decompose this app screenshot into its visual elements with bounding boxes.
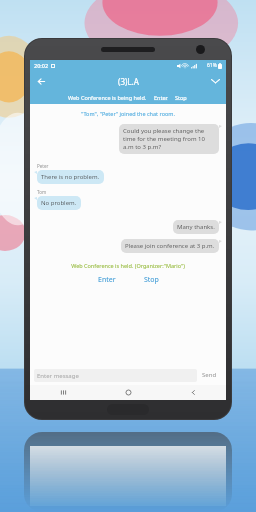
button[interactable]: Home — [96, 385, 161, 400]
staticText: Many thanks. — [177, 223, 215, 231]
button[interactable]: Stop — [136, 274, 167, 286]
staticText: There is no problem. — [41, 173, 100, 181]
staticText: Web Conference is held. (Organizer:"Mari… — [34, 262, 222, 269]
button[interactable]: Recent apps — [30, 385, 96, 400]
staticText: Enter message — [37, 372, 79, 380]
button[interactable]: Expand menu — [207, 73, 223, 89]
button[interactable]: Send — [197, 368, 222, 382]
staticText: 20:02 — [34, 62, 49, 69]
button[interactable]: Enter — [153, 94, 169, 101]
button[interactable]: Back — [33, 73, 49, 89]
staticText: 61% — [207, 62, 217, 69]
staticText: (3)L.A — [118, 76, 139, 87]
staticText: "Tom", "Peter" joined the chat room. — [34, 110, 222, 117]
button[interactable]: Could you please change the time for the… — [119, 124, 219, 154]
staticText: Enter — [98, 275, 116, 285]
staticText: Enter — [154, 94, 168, 101]
staticText: Peter — [37, 163, 49, 169]
staticText: Stop — [144, 275, 159, 285]
button[interactable]: Enter message — [34, 369, 197, 382]
button[interactable]: Please join conference at 3 p.m. — [121, 239, 219, 253]
button[interactable]: Stop — [174, 94, 188, 101]
staticText: No problem. — [41, 199, 77, 207]
button[interactable]: Back — [161, 385, 226, 400]
staticText: Please join conference at 3 p.m. — [125, 242, 215, 250]
staticText: Tom — [37, 189, 47, 195]
staticText: Web Conference is being held. — [68, 94, 147, 101]
staticText: Send — [202, 371, 217, 379]
button[interactable]: Enter — [90, 274, 124, 286]
button[interactable]: No problem. — [37, 196, 81, 210]
staticText: Could you please change the time for the… — [123, 127, 215, 151]
button[interactable]: Many thanks. — [173, 220, 219, 234]
button[interactable]: There is no problem. — [37, 170, 104, 184]
staticText: Stop — [175, 94, 187, 101]
